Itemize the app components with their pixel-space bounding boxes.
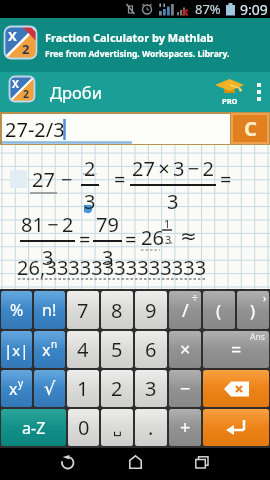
- staticText: 4: [77, 336, 89, 363]
- button[interactable]: X: [0, 18, 270, 72]
- button[interactable]: [115, 448, 155, 480]
- staticText: n!: [42, 299, 57, 321]
- button[interactable]: [182, 448, 222, 480]
- staticText: 27-2/3: [5, 116, 65, 143]
- staticText: 0: [78, 414, 90, 441]
- button[interactable]: ␣: [101, 409, 133, 446]
- staticText: 5: [111, 336, 123, 363]
- button[interactable]: 2: [101, 370, 133, 407]
- button[interactable]: +: [169, 409, 201, 446]
- button[interactable]: 5: [101, 331, 133, 368]
- staticText: ): [250, 299, 256, 322]
- staticText: (: [216, 299, 222, 322]
- staticText: 26,33333333333333: [17, 254, 207, 281]
- button[interactable]: X: [9, 76, 35, 102]
- staticText: √: [44, 378, 56, 399]
- staticText: C: [244, 115, 257, 142]
- staticText: =: [231, 337, 242, 362]
- button[interactable]: |x|: [1, 331, 32, 368]
- staticText: 27: [32, 166, 55, 193]
- staticText: 7: [77, 297, 89, 324]
- staticText: 9: [145, 297, 157, 324]
- staticText: x: [42, 339, 51, 361]
- staticText: −: [61, 166, 73, 193]
- staticText: =: [220, 166, 232, 193]
- staticText: 8: [111, 297, 123, 324]
- button[interactable]: [203, 409, 269, 446]
- staticText: 3: [145, 375, 157, 402]
- button[interactable]: 9: [135, 291, 167, 329]
- staticText: 6: [145, 336, 157, 363]
- staticText: 26: [141, 224, 164, 251]
- staticText: 2: [111, 375, 123, 402]
- button[interactable]: 1: [67, 370, 99, 407]
- button[interactable]: 4: [67, 331, 99, 368]
- button[interactable]: %: [1, 291, 32, 329]
- button[interactable]: ): [237, 291, 269, 329]
- button[interactable]: [257, 83, 261, 101]
- button[interactable]: ×: [169, 331, 201, 368]
- staticText: 2: [22, 40, 30, 58]
- button[interactable]: /: [169, 291, 201, 329]
- button[interactable]: [203, 370, 269, 407]
- button[interactable]: x: [34, 331, 65, 368]
- staticText: 1: [164, 216, 171, 231]
- button[interactable]: 7: [67, 291, 99, 329]
- button[interactable]: C: [232, 114, 268, 143]
- staticText: Fraction Calculator by Mathlab: [45, 30, 214, 45]
- button[interactable]: PRO: [215, 79, 244, 106]
- staticText: PRO: [222, 96, 238, 106]
- button[interactable]: x: [1, 370, 32, 407]
- staticText: |x|: [4, 340, 29, 360]
- staticText: ›: [263, 291, 267, 305]
- staticText: ×: [180, 337, 191, 362]
- staticText: ≈: [180, 224, 197, 247]
- staticText: +: [180, 415, 191, 440]
- button[interactable]: a-Z: [1, 409, 66, 446]
- button[interactable]: .: [135, 409, 167, 446]
- button[interactable]: −: [169, 370, 201, 407]
- button[interactable]: (: [203, 291, 235, 329]
- staticText: 81 − 2: [21, 211, 74, 238]
- staticText: 2: [84, 155, 96, 182]
- staticText: x: [9, 378, 18, 400]
- staticText: =: [114, 166, 126, 193]
- staticText: 27 × 3 − 2: [132, 155, 214, 182]
- staticText: 3: [84, 188, 96, 215]
- staticText: n: [51, 337, 58, 351]
- staticText: ␣: [113, 420, 122, 436]
- staticText: 3: [165, 232, 172, 247]
- staticText: X: [12, 77, 19, 91]
- button[interactable]: =: [203, 331, 269, 368]
- staticText: 79: [96, 211, 119, 238]
- staticText: X: [8, 27, 17, 45]
- button[interactable]: 8: [101, 291, 133, 329]
- staticText: /: [182, 298, 189, 323]
- staticText: .: [148, 414, 154, 441]
- button[interactable]: √: [34, 370, 65, 407]
- staticText: y: [18, 376, 24, 390]
- button[interactable]: [47, 448, 87, 480]
- button[interactable]: 0: [68, 409, 99, 446]
- staticText: 2: [23, 87, 29, 101]
- staticText: 3: [42, 244, 54, 271]
- staticText: =: [125, 226, 137, 253]
- staticText: 87%: [195, 0, 221, 18]
- staticText: 1: [77, 375, 89, 402]
- staticText: %: [10, 299, 24, 321]
- button[interactable]: 3: [135, 370, 167, 407]
- staticText: Дроби: [50, 81, 102, 103]
- staticText: a-Z: [22, 417, 46, 439]
- staticText: −: [180, 376, 191, 401]
- staticText: 3: [167, 188, 179, 215]
- staticText: 9:09: [240, 0, 268, 18]
- staticText: Free from Advertising. Workspaces. Libra…: [45, 48, 230, 60]
- button[interactable]: 6: [135, 331, 167, 368]
- staticText: Ans: [250, 331, 265, 343]
- staticText: 3: [102, 244, 114, 271]
- staticText: =: [79, 226, 91, 253]
- staticText: ÷: [192, 291, 198, 305]
- button[interactable]: n!: [34, 291, 65, 329]
